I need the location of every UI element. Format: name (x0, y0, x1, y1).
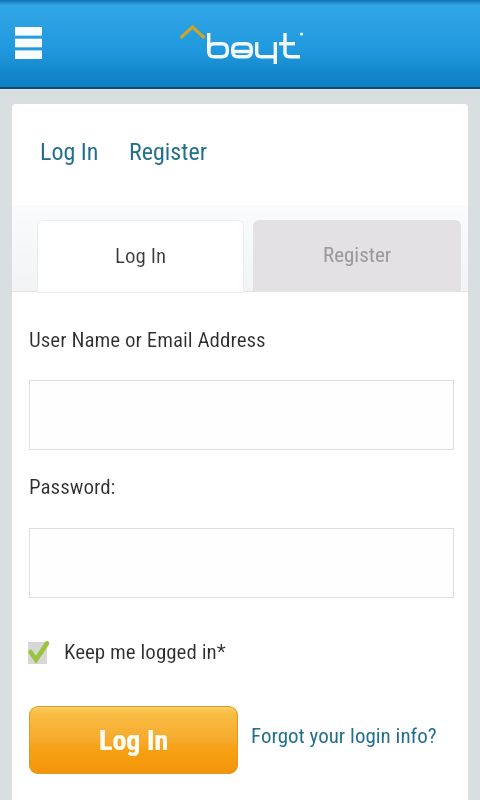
staticText: User Name or Email Address (29, 328, 266, 353)
staticText: Log In (99, 724, 169, 757)
button[interactable]: Register (129, 138, 207, 166)
button[interactable] (29, 528, 454, 598)
staticText: Log In (115, 244, 167, 269)
button[interactable]: Menu (2, 16, 55, 69)
button[interactable]: Log In (40, 138, 99, 166)
button[interactable]: Register (253, 220, 461, 291)
staticText: Register (323, 243, 392, 268)
button[interactable]: Keep me logged in* (28, 640, 226, 665)
staticText: Keep me logged in* (64, 640, 226, 665)
button[interactable]: Log In (29, 706, 238, 774)
staticText: Password: (29, 475, 116, 500)
button[interactable] (29, 380, 454, 450)
button[interactable]: Forgot your login info? (251, 724, 437, 749)
button[interactable]: Log In (37, 220, 244, 293)
